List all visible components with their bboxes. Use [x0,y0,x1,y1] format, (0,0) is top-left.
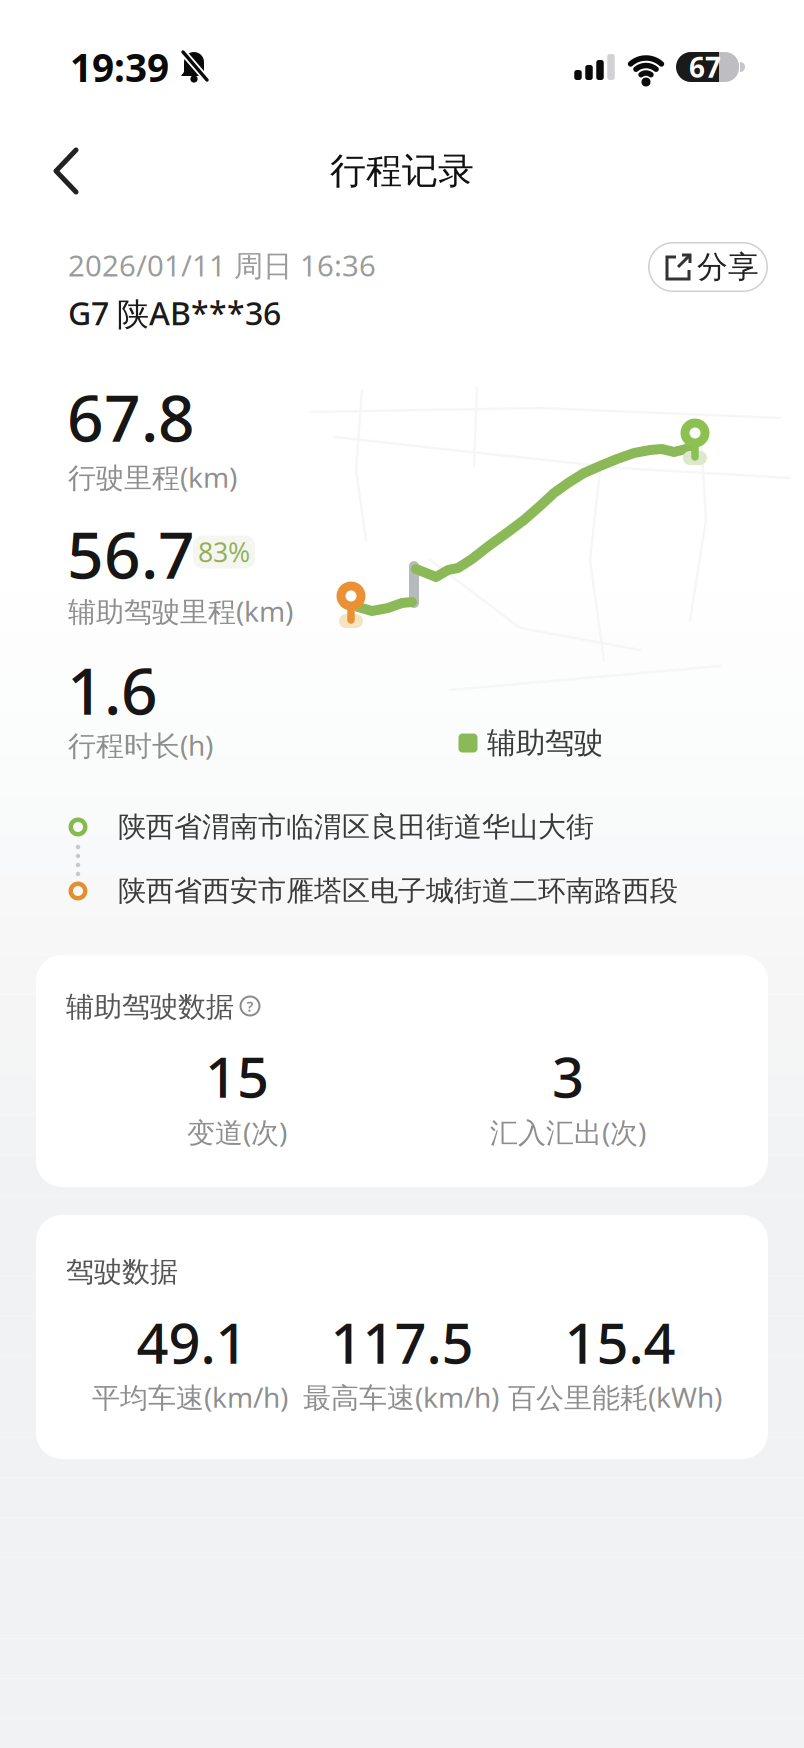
staticText: 19:39 [70,41,169,93]
staticText: 行程时长(h) [68,726,213,764]
button[interactable]: Back [33,135,105,207]
staticText: 平均车速(km/h) [92,1378,288,1416]
staticText: 67 [689,48,721,86]
staticText: 49.1 [136,1305,247,1379]
staticText: 15 [205,1039,269,1113]
button[interactable]: Help [236,992,264,1020]
staticText: 辅助驾驶数据 [66,990,234,1024]
staticText: 67.8 [67,374,195,459]
staticText: 百公里能耗(kWh) [508,1378,722,1416]
staticText: 驾驶数据 [66,1255,178,1289]
staticText: 最高车速(km/h) [303,1378,499,1416]
staticText: 汇入汇出(次) [490,1113,646,1151]
staticText: 陕西省西安市雁塔区电子城街道二环南路西段 [118,874,678,908]
staticText: 分享 [697,248,759,286]
button[interactable]: 分享 [648,242,768,292]
staticText: 117.5 [330,1305,473,1379]
staticText: 变道(次) [187,1113,287,1151]
staticText: 15.4 [564,1305,675,1379]
staticText: 3 [552,1039,584,1113]
staticText: G7 陕AB***36 [68,292,281,334]
staticText: 行程记录 [330,149,474,193]
staticText: 83% [198,534,250,570]
staticText: 陕西省渭南市临渭区良田街道华山大街 [118,810,594,844]
staticText: 辅助驾驶 [487,725,603,761]
staticText: 2026/01/11 周日 16:36 [68,245,376,284]
staticText: 辅助驾驶里程(km) [68,592,293,630]
staticText: ? [246,996,253,1016]
staticText: 1.6 [67,647,158,732]
staticText: 56.7 [67,511,195,596]
staticText: 行驶里程(km) [68,458,237,496]
